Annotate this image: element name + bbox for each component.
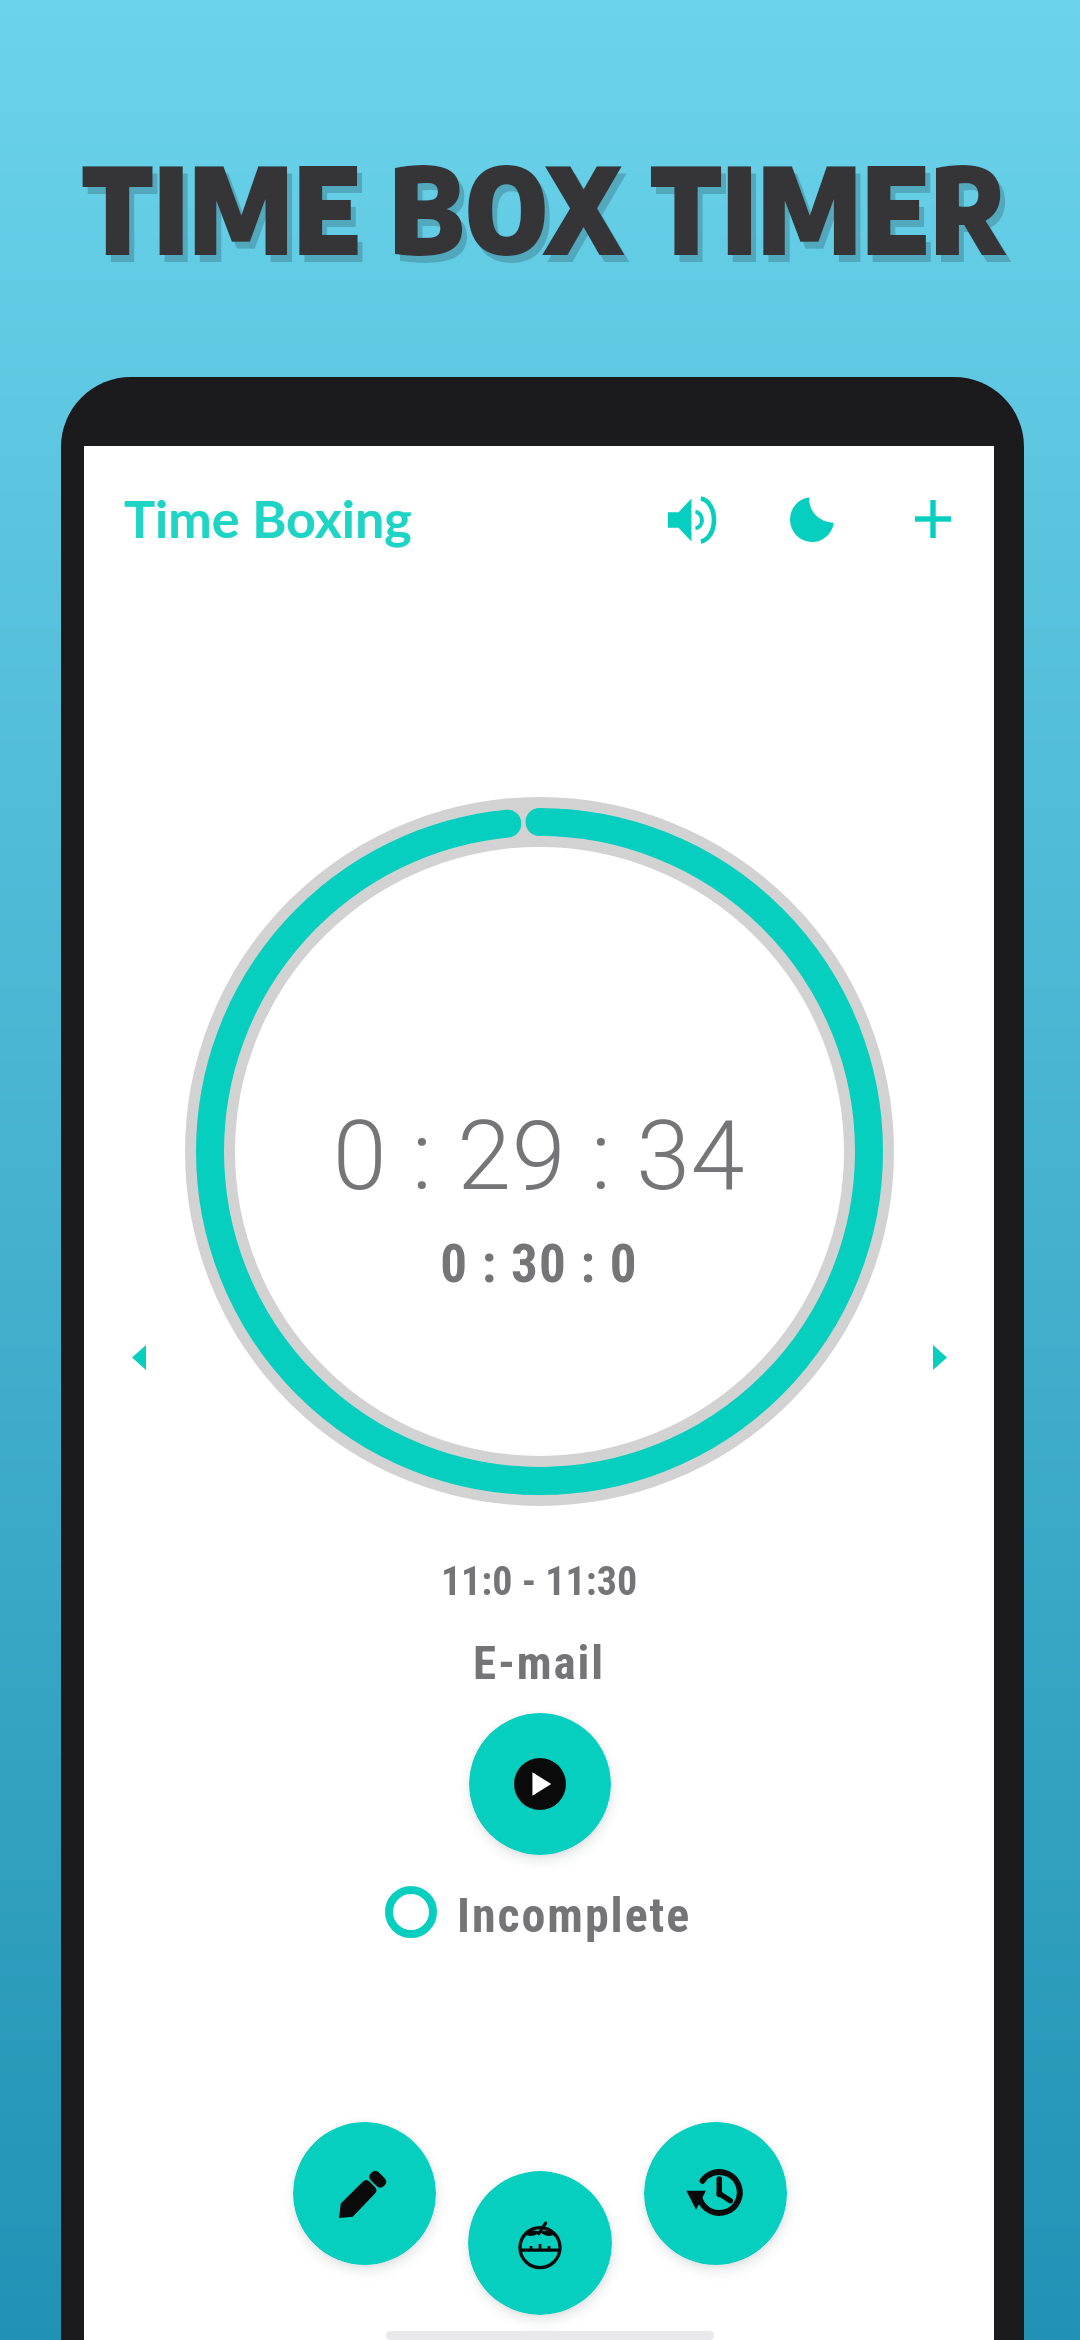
- button[interactable]: Pomodoro: [468, 2171, 612, 2315]
- staticText: 0 : 30 : 0: [84, 1233, 994, 1295]
- staticText: TIME BOX TIMER: [10, 139, 1080, 288]
- staticText: E-mail: [84, 1635, 994, 1690]
- staticText: 0 : 29 : 34: [84, 1099, 994, 1213]
- button[interactable]: Sound: [645, 474, 737, 566]
- button[interactable]: Night mode: [766, 473, 858, 565]
- button[interactable]: Add task: [887, 473, 979, 565]
- staticText: Incomplete: [457, 1887, 692, 1943]
- staticText: TIME BOX TIMER: [5, 132, 1080, 281]
- staticText: Time Boxing: [124, 487, 412, 549]
- staticText: 11:0 - 11:30: [84, 1558, 994, 1605]
- button[interactable]: Incomplete: [378, 1882, 692, 1948]
- button[interactable]: Next task: [908, 1325, 972, 1389]
- button[interactable]: Start timer: [469, 1713, 611, 1855]
- button[interactable]: History: [644, 2122, 787, 2265]
- button[interactable]: Previous task: [107, 1325, 171, 1389]
- button[interactable]: Time Boxing: [110, 467, 426, 567]
- button[interactable]: Edit task: [293, 2122, 436, 2265]
